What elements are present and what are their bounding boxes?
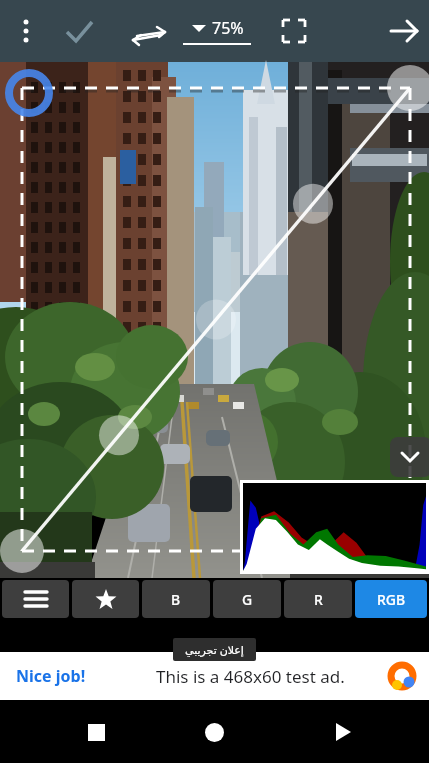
staticText: B bbox=[171, 590, 181, 609]
staticText: 75% bbox=[212, 17, 244, 39]
button[interactable] bbox=[56, 7, 104, 55]
button[interactable]: Nice job! bbox=[0, 652, 429, 700]
button[interactable] bbox=[125, 7, 173, 55]
button[interactable] bbox=[319, 708, 367, 756]
button[interactable] bbox=[0, 7, 48, 55]
staticText: This is a 468x60 test ad. bbox=[156, 665, 345, 688]
button[interactable] bbox=[270, 7, 318, 55]
staticText: إعلان تجريبي bbox=[185, 642, 244, 657]
button[interactable]: G bbox=[213, 580, 281, 618]
staticText: RGB bbox=[377, 590, 406, 609]
button[interactable] bbox=[72, 708, 120, 756]
button[interactable]: 75% bbox=[183, 17, 251, 45]
staticText: R bbox=[314, 590, 323, 609]
button[interactable]: RGB bbox=[355, 580, 427, 618]
button[interactable] bbox=[381, 7, 429, 55]
button[interactable] bbox=[72, 580, 139, 618]
staticText: G bbox=[242, 590, 253, 609]
button[interactable] bbox=[2, 580, 69, 618]
button[interactable] bbox=[190, 708, 238, 756]
button[interactable] bbox=[0, 62, 429, 578]
button[interactable]: B bbox=[142, 580, 210, 618]
staticText: Nice job! bbox=[16, 665, 86, 687]
button[interactable]: R bbox=[284, 580, 352, 618]
